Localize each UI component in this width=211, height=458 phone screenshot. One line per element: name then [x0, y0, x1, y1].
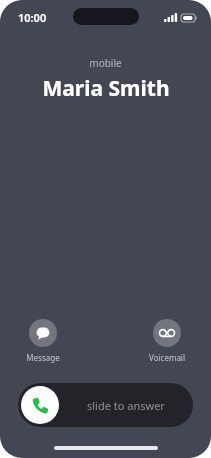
button[interactable]: Answer call [21, 386, 59, 424]
staticText: Voicemail [149, 352, 185, 363]
button[interactable]: Voicemail [147, 317, 187, 365]
button[interactable]: Message [24, 317, 62, 365]
button[interactable]: slide to answer [18, 383, 193, 427]
staticText: 10:00 [18, 10, 47, 25]
staticText: Maria Smith [42, 74, 170, 103]
staticText: Message [26, 352, 60, 363]
staticText: slide to answer [87, 398, 165, 413]
staticText: mobile [89, 56, 122, 70]
